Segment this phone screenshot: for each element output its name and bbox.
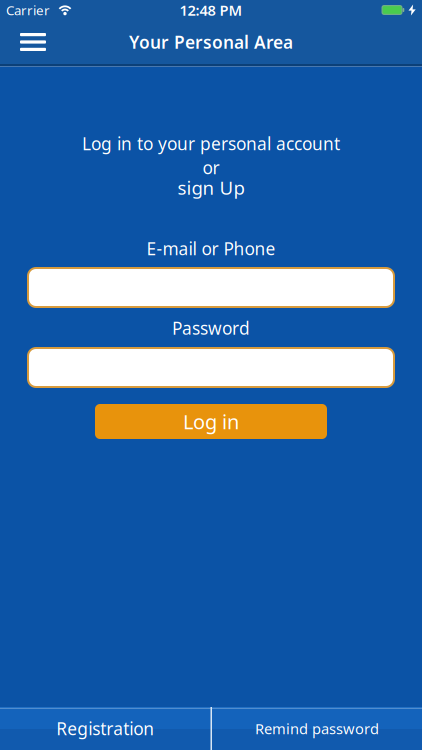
staticText: Carrier [6, 1, 50, 19]
button[interactable]: Registration [0, 707, 210, 750]
staticText: sign Up [177, 175, 244, 200]
staticText: 12:48 PM [179, 0, 242, 20]
button[interactable]: Log in [95, 404, 327, 439]
staticText: or [202, 156, 219, 179]
staticText: Log in [183, 408, 239, 435]
staticText: Log in to your personal account [82, 132, 340, 155]
button[interactable]: Remind password [212, 707, 422, 750]
staticText: Your Personal Area [129, 30, 293, 53]
button[interactable]: Menu [0, 20, 58, 64]
staticText: Registration [56, 717, 154, 740]
staticText: E-mail or Phone [146, 237, 275, 260]
staticText: Remind password [255, 719, 379, 738]
staticText: Password [172, 316, 250, 339]
